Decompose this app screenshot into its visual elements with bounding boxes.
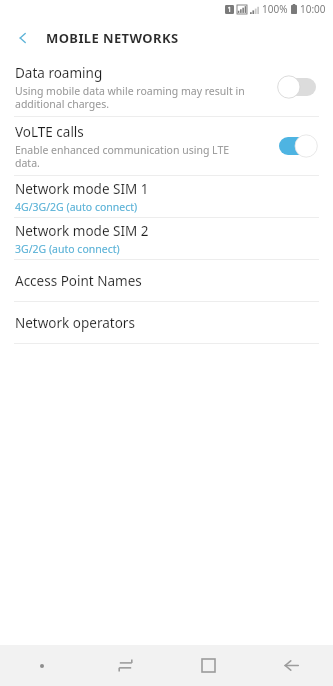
button[interactable]: Network mode SIM 2	[0, 218, 333, 259]
staticText: Network mode SIM 2	[15, 222, 149, 240]
staticText: Network mode SIM 1	[15, 180, 149, 198]
staticText: 10:00	[300, 2, 326, 16]
staticText: Using mobile data while roaming may resu…	[15, 84, 245, 111]
staticText: VoLTE calls	[15, 123, 84, 141]
button[interactable]: Off	[275, 74, 319, 100]
button[interactable]: Network mode SIM 1	[0, 176, 333, 217]
button[interactable]: Menu indicator	[0, 645, 84, 686]
staticText: 3G/2G (auto connect)	[15, 242, 120, 256]
button[interactable]: Data roaming	[0, 58, 333, 116]
staticText: Access Point Names	[15, 272, 142, 290]
button[interactable]: Home	[167, 645, 250, 686]
staticText: 100%	[262, 2, 288, 16]
staticText: 4G/3G/2G (auto connect)	[15, 200, 138, 214]
button[interactable]: Network operators	[0, 302, 333, 343]
button[interactable]: Access Point Names	[0, 260, 333, 301]
staticText: Data roaming	[15, 64, 103, 82]
staticText: Enable enhanced communication using LTE …	[15, 143, 230, 170]
button[interactable]: Recent apps	[84, 645, 167, 686]
staticText: MOBILE NETWORKS	[46, 29, 179, 47]
staticText: Network operators	[15, 314, 135, 332]
button[interactable]: On	[275, 133, 319, 159]
button[interactable]: Back	[250, 645, 333, 686]
button[interactable]: VoLTE calls	[0, 117, 333, 175]
button[interactable]: Back	[8, 23, 38, 53]
